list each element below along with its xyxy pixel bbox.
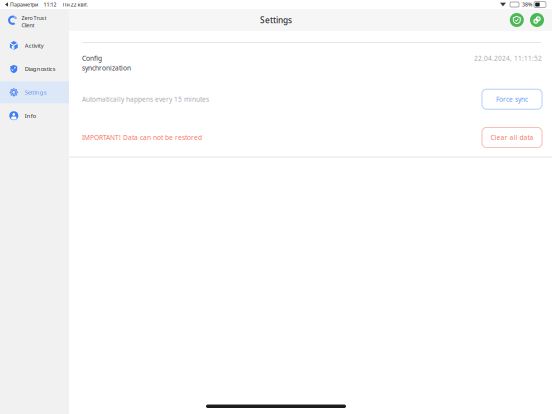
- button[interactable]: Connection: [530, 13, 544, 27]
- staticText: Пн 22 квіт.: [62, 1, 87, 8]
- staticText: Activity: [25, 42, 44, 49]
- button[interactable]: Info: [0, 105, 69, 127]
- staticText: Clear all data: [490, 133, 533, 142]
- staticText: Параметри: [10, 1, 38, 8]
- button[interactable]: Config: [69, 43, 552, 80]
- staticText: Info: [25, 112, 36, 120]
- staticText: 11:12: [43, 1, 56, 8]
- staticText: Settings: [260, 14, 292, 26]
- button[interactable]: Settings: [0, 81, 69, 103]
- staticText: Zero Trust: [21, 14, 46, 21]
- staticText: synchronization: [82, 64, 131, 72]
- staticText: Diagnostics: [25, 65, 56, 73]
- staticText: Force sync: [496, 95, 528, 104]
- button[interactable]: Diagnostics: [0, 58, 69, 80]
- button[interactable]: Force sync: [482, 89, 542, 109]
- staticText: 38%: [522, 1, 532, 8]
- staticText: Settings: [25, 88, 47, 96]
- staticText: Client: [21, 21, 34, 29]
- staticText: IMPORTANT! Data can not be restored: [82, 133, 202, 142]
- button[interactable]: Activity: [0, 34, 69, 56]
- staticText: Config: [82, 54, 102, 63]
- staticText: 22.04.2024, 11:11:52: [474, 54, 542, 63]
- button[interactable]: Clear all data: [482, 127, 542, 147]
- button[interactable]: Protection status: [510, 13, 524, 27]
- staticText: Automatically happens every 15 minutes: [82, 95, 209, 104]
